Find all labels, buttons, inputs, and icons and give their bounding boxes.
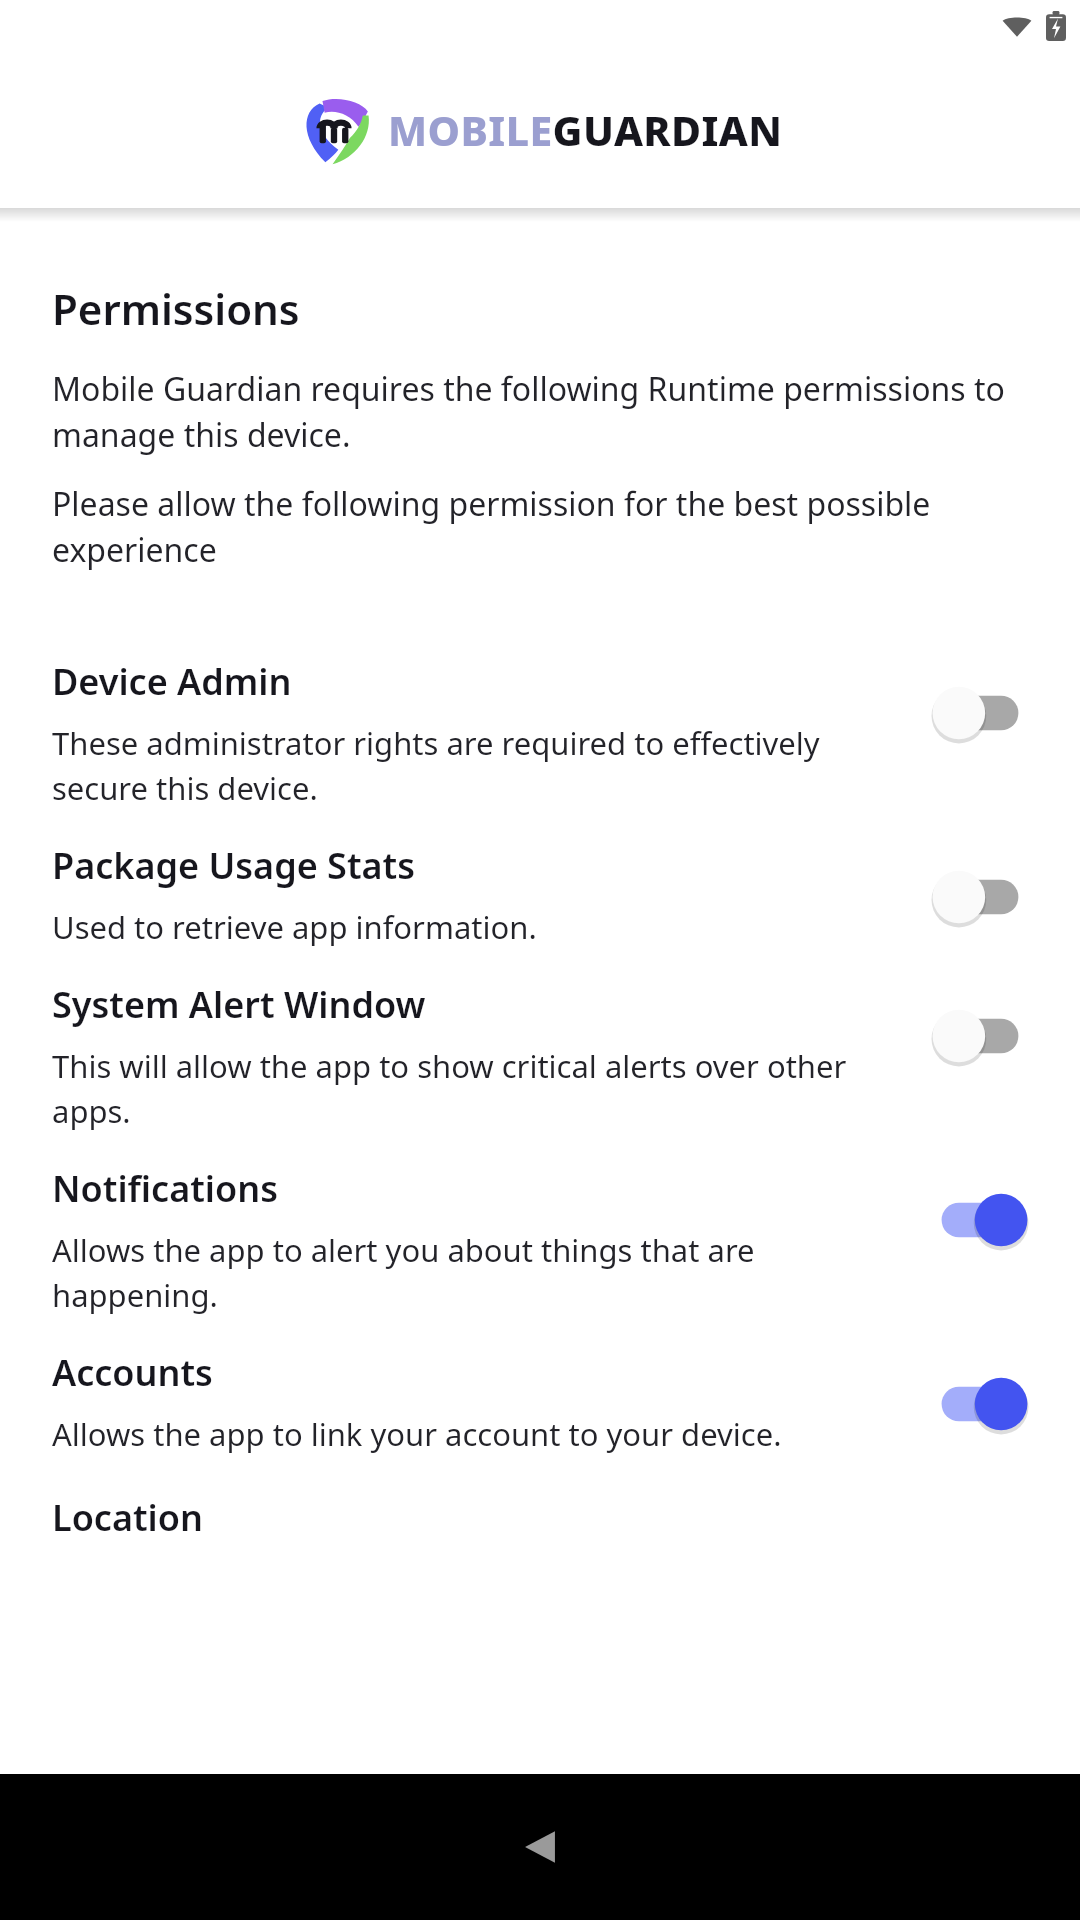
button[interactable]: Package Usage Stats toggle, off bbox=[932, 869, 1028, 925]
staticText: Allows the app to alert you about things… bbox=[52, 1229, 908, 1316]
button[interactable]: System Alert Window bbox=[52, 980, 1028, 1132]
button[interactable]: Package Usage Stats bbox=[52, 841, 1028, 948]
button[interactable]: Location bbox=[52, 1493, 1028, 1542]
staticText: Package Usage Stats bbox=[52, 841, 415, 890]
staticText: These administrator rights are required … bbox=[52, 722, 908, 809]
staticText: Accounts bbox=[52, 1348, 213, 1397]
button[interactable]: Back bbox=[498, 1805, 582, 1889]
staticText: Device Admin bbox=[52, 657, 292, 706]
button[interactable]: Device Admin bbox=[52, 657, 1028, 809]
button[interactable]: Device Admin toggle, off bbox=[932, 685, 1028, 741]
staticText: Location bbox=[52, 1493, 203, 1542]
button[interactable]: Notifications toggle, on bbox=[932, 1192, 1028, 1248]
staticText: Allows the app to link your account to y… bbox=[52, 1413, 782, 1455]
staticText: Mobile Guardian requires the following R… bbox=[52, 367, 1028, 456]
staticText: This will allow the app to show critical… bbox=[52, 1045, 908, 1132]
button[interactable]: Accounts toggle, on bbox=[932, 1376, 1028, 1432]
staticText: Permissions bbox=[52, 280, 300, 337]
staticText: MOBILEGUARDIAN bbox=[388, 102, 783, 158]
button[interactable]: Notifications bbox=[52, 1164, 1028, 1316]
staticText: Notifications bbox=[52, 1164, 278, 1213]
button[interactable]: Accounts bbox=[52, 1348, 1028, 1455]
button[interactable]: System Alert Window toggle, off bbox=[932, 1008, 1028, 1064]
staticText: System Alert Window bbox=[52, 980, 426, 1029]
staticText: Please allow the following permission fo… bbox=[52, 482, 1028, 571]
staticText: Used to retrieve app information. bbox=[52, 906, 537, 948]
